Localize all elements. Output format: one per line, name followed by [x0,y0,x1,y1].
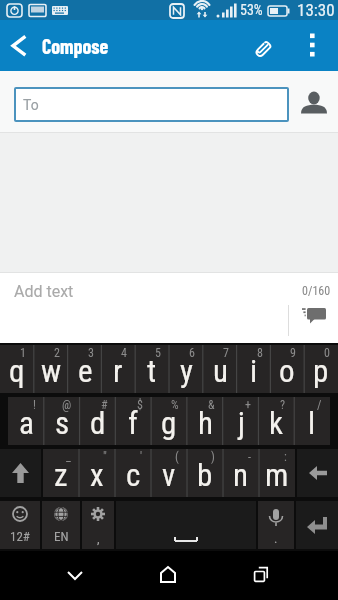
button[interactable]: x [79,449,115,497]
button[interactable]: u [203,345,237,393]
staticText: 7 [223,346,229,360]
button[interactable]: k [258,397,294,445]
button[interactable]: l [294,397,330,445]
button[interactable]: f [115,397,151,445]
staticText: 6 [189,346,195,360]
button[interactable] [233,551,289,600]
staticText: ( [175,450,179,464]
staticText: n [233,457,249,493]
staticText: 12# [10,529,30,544]
button[interactable] [116,501,256,549]
staticText: j [238,405,245,441]
staticText: c [126,457,141,493]
button[interactable]: t [135,345,169,393]
button[interactable]: c [115,449,151,497]
staticText: . [274,531,278,546]
button[interactable] [296,88,332,124]
button[interactable]: g [151,397,187,445]
staticText: 13:30 [297,0,335,20]
staticText: k [269,405,283,441]
staticText: s [55,405,70,441]
button[interactable]: v [151,449,187,497]
staticText: @ [62,398,72,412]
button[interactable]: r [101,345,135,393]
staticText: 4 [121,346,127,360]
button[interactable]: a [8,397,44,445]
staticText: f [128,405,138,441]
button[interactable]: e [68,345,102,393]
staticText: i [250,353,258,389]
staticText: Compose [42,34,109,58]
staticText: ? [280,398,286,412]
staticText: a [19,405,34,441]
button[interactable]: n [223,449,259,497]
button[interactable] [140,551,196,600]
button[interactable] [47,551,103,600]
staticText: Add text [14,282,74,301]
button[interactable]: . [258,501,294,549]
button[interactable]: p [304,345,338,393]
button[interactable]: h [187,397,223,445]
button[interactable]: o [270,345,304,393]
staticText: , [97,531,100,546]
staticText: l [308,405,316,441]
staticText: ) [211,450,215,464]
button[interactable]: j [223,397,259,445]
button[interactable]: s [44,397,80,445]
button[interactable]: , [82,501,114,549]
staticText: b [197,457,213,493]
staticText: x [90,457,104,493]
button[interactable] [245,34,282,64]
button[interactable] [297,449,338,497]
staticText: & [208,398,215,412]
staticText: : [284,450,287,464]
staticText: ' [140,450,143,464]
staticText: q [9,353,25,389]
button[interactable] [296,501,338,549]
staticText: m [265,457,289,493]
staticText: 5 [155,346,161,360]
button[interactable] [296,28,330,64]
button[interactable]: z [43,449,79,497]
button[interactable]: y [169,345,203,393]
button[interactable]: 12# [0,501,40,549]
staticText: / [317,398,322,412]
staticText: y [180,353,193,389]
staticText: z [54,457,68,493]
staticText: 53% [240,2,263,18]
staticText: 1 [20,346,26,360]
button[interactable] [0,449,41,497]
button[interactable]: w [34,345,68,393]
staticText: 3 [88,346,94,360]
staticText: 9 [290,346,296,360]
staticText: d [90,405,106,441]
staticText: h [198,405,213,441]
button[interactable]: EN [42,501,80,549]
button[interactable]: Compose [0,20,109,71]
staticText: - [248,450,251,464]
staticText: v [162,457,176,493]
button[interactable] [294,305,334,337]
staticText: _ [66,450,71,464]
button[interactable]: i [237,345,271,393]
button[interactable]: d [80,397,116,445]
staticText: w [41,353,62,389]
staticText: u [213,353,228,389]
button[interactable]: b [187,449,223,497]
staticText: 0/160 [302,284,331,298]
staticText: + [245,398,251,412]
staticText: # [101,398,108,412]
staticText: g [161,405,177,441]
staticText: 8 [257,346,263,360]
button[interactable]: To [16,89,287,120]
staticText: e [78,353,93,389]
staticText: $ [137,398,143,412]
staticText: p [313,353,329,389]
staticText: r [113,353,123,389]
staticText: To [23,97,39,113]
button[interactable]: m [259,449,295,497]
staticText: 0 [324,346,330,360]
staticText: 2 [54,346,60,360]
staticText: ! [33,398,36,412]
button[interactable]: q [0,345,34,393]
